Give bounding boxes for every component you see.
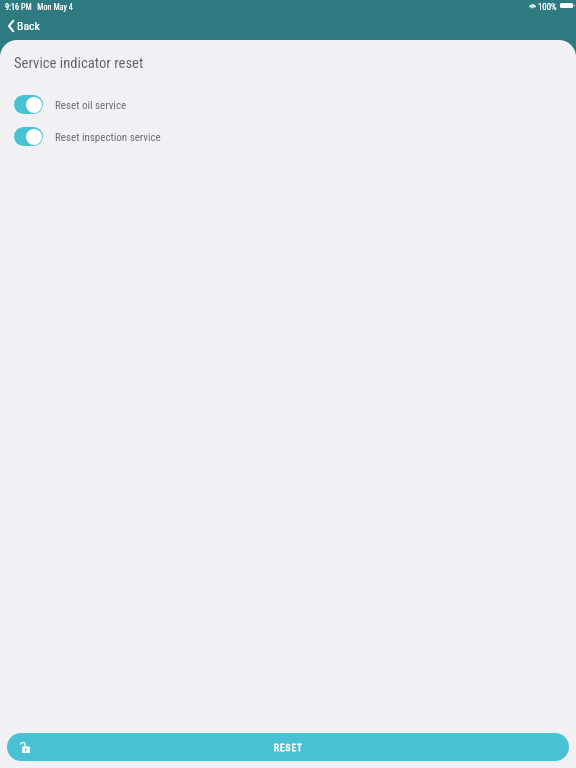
staticText: Back [17,19,40,33]
button[interactable]: Reset oil service toggle, on [0,92,576,117]
button[interactable]: Reset inspection service toggle, on [0,124,576,149]
button[interactable]: Reset oil service toggle, on [14,95,43,114]
staticText: Service indicator reset [14,54,144,71]
button[interactable]: RESET [7,733,569,761]
button[interactable]: Reset inspection service toggle, on [14,127,43,146]
staticText: Reset oil service [55,99,127,112]
staticText: RESET [274,742,303,753]
staticText: 9:16 PM Mon May 4 [5,2,73,12]
button[interactable]: Back [0,17,48,37]
staticText: Reset inspection service [55,131,161,144]
staticText: 100% [538,2,557,12]
